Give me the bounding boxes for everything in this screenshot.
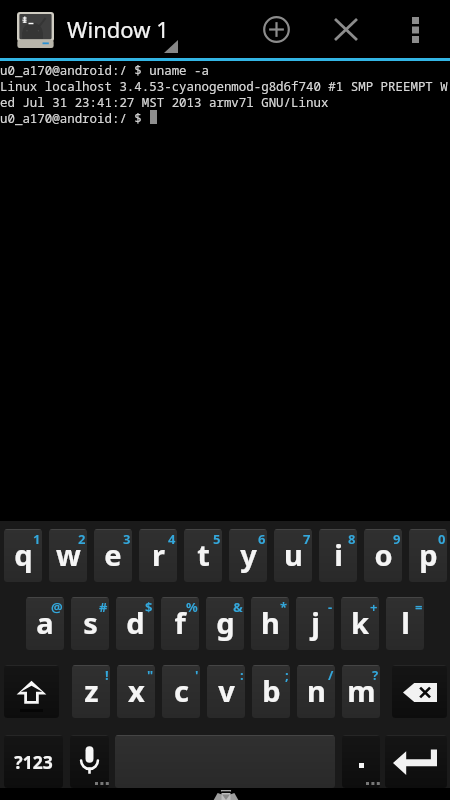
staticText: "	[147, 666, 154, 684]
button[interactable]: d	[116, 597, 154, 650]
staticText: z	[84, 671, 99, 710]
button[interactable]: a	[26, 597, 64, 650]
staticText: +	[370, 598, 378, 616]
staticText: -	[328, 598, 333, 616]
staticText: &	[233, 598, 243, 616]
staticText: 8	[348, 530, 356, 548]
button[interactable]: m	[342, 665, 380, 718]
button[interactable]: h	[251, 597, 289, 650]
button[interactable]: w	[49, 529, 87, 582]
staticText: y	[240, 535, 257, 574]
button[interactable]: ?123	[4, 735, 63, 788]
staticText: 4	[168, 530, 176, 548]
button[interactable]: New window	[249, 0, 301, 57]
button[interactable]: Close window	[319, 0, 371, 57]
staticText: =	[415, 598, 423, 616]
staticText: u0_a170@android:/ $ uname -a	[0, 62, 209, 79]
button[interactable]: l	[386, 597, 424, 650]
button[interactable]: k	[341, 597, 379, 650]
staticText: i	[334, 535, 343, 574]
staticText: p	[419, 535, 438, 574]
button[interactable]: q	[4, 529, 42, 582]
button[interactable]: e	[94, 529, 132, 582]
button[interactable]: v	[207, 665, 245, 718]
button[interactable]: More options	[392, 0, 440, 57]
staticText: 0	[438, 530, 446, 548]
staticText: k	[351, 603, 369, 642]
staticText: 2	[78, 530, 86, 548]
button[interactable]: Window 1	[10, 0, 190, 57]
staticText: x	[128, 671, 145, 710]
staticText: $	[145, 598, 153, 616]
staticText: ?	[372, 666, 379, 684]
staticText: /	[328, 666, 334, 684]
staticText: g	[216, 603, 235, 642]
button[interactable]: o	[364, 529, 402, 582]
staticText: ;	[285, 666, 289, 684]
button[interactable]: f	[161, 597, 199, 650]
staticText: v	[218, 671, 235, 710]
staticText: f	[174, 603, 186, 642]
staticText: q	[14, 535, 33, 574]
button[interactable]: Backspace	[392, 665, 447, 718]
staticText: '	[195, 666, 199, 684]
button[interactable]: b	[252, 665, 290, 718]
staticText: j	[311, 603, 320, 642]
staticText: t	[197, 535, 210, 574]
button[interactable]: Voice input	[70, 735, 109, 788]
button[interactable]: j	[296, 597, 334, 650]
staticText: h	[261, 603, 280, 642]
staticText: 9	[393, 530, 401, 548]
staticText: @	[51, 598, 63, 616]
button[interactable]: y	[229, 529, 267, 582]
staticText: 3	[123, 530, 131, 548]
staticText: e	[104, 535, 122, 574]
staticText: ed Jul 31 23:41:27 MST 2013 armv7l GNU/L…	[0, 94, 329, 111]
staticText: c	[174, 671, 189, 710]
staticText: l	[401, 603, 410, 642]
staticText: w	[56, 535, 81, 574]
staticText: Window 1	[67, 14, 169, 44]
staticText: 1	[33, 530, 41, 548]
button[interactable]: Space	[115, 735, 335, 788]
button[interactable]: i	[319, 529, 357, 582]
button[interactable]: x	[117, 665, 155, 718]
button[interactable]: s	[71, 597, 109, 650]
staticText: ?123	[14, 750, 53, 774]
staticText: :	[240, 666, 244, 684]
staticText: !	[105, 666, 109, 684]
staticText: 6	[258, 530, 266, 548]
button[interactable]: n	[297, 665, 335, 718]
staticText: %	[186, 598, 198, 616]
staticText: 7	[303, 530, 311, 548]
staticText: r	[152, 535, 165, 574]
staticText: u0_a170@android:/ $	[0, 110, 150, 127]
button[interactable]: Back	[212, 790, 240, 800]
staticText: *	[280, 598, 288, 616]
staticText: o	[374, 535, 393, 574]
staticText: Linux localhost 3.4.53-cyanogenmod-g8d6f…	[0, 78, 448, 95]
staticText: s	[83, 603, 98, 642]
staticText: u	[284, 535, 303, 574]
staticText: 5	[213, 530, 221, 548]
staticText: b	[262, 671, 281, 710]
staticText: d	[126, 603, 145, 642]
button[interactable]: Enter	[385, 735, 447, 788]
button[interactable]: t	[184, 529, 222, 582]
button[interactable]: g	[206, 597, 244, 650]
button[interactable]	[342, 735, 380, 788]
button[interactable]: Shift	[4, 665, 59, 718]
staticText: a	[36, 603, 54, 642]
button[interactable]: c	[162, 665, 200, 718]
staticText: #	[99, 598, 108, 616]
staticText: m	[347, 671, 376, 710]
button[interactable]: u	[274, 529, 312, 582]
button[interactable]: r	[139, 529, 177, 582]
button[interactable]: z	[72, 665, 110, 718]
button[interactable]: p	[409, 529, 447, 582]
staticText: n	[307, 671, 326, 710]
